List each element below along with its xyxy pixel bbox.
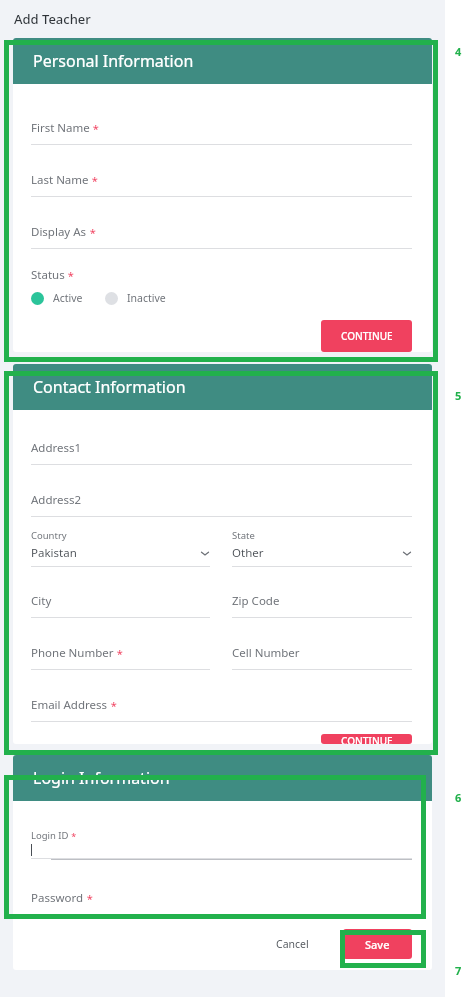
staticText: Cancel <box>276 937 309 951</box>
staticText: Status <box>31 267 65 283</box>
button[interactable]: Address2 <box>31 492 412 517</box>
staticText: 5 <box>455 388 462 403</box>
staticText: Address1 <box>31 440 82 456</box>
button[interactable]: First Name <box>31 120 412 145</box>
staticText: State <box>232 529 255 542</box>
staticText: Last Name <box>31 172 89 188</box>
button[interactable]: State <box>232 529 412 567</box>
staticText: First Name <box>31 120 90 136</box>
other: Expand Country <box>200 548 210 558</box>
staticText: Personal Information <box>33 50 194 72</box>
button[interactable]: Zip Code <box>232 593 412 618</box>
staticText: * <box>65 268 74 283</box>
staticText: Inactive <box>127 291 166 305</box>
staticText: * <box>87 225 96 240</box>
button[interactable]: Password <box>31 890 412 915</box>
staticText: Login Information <box>33 767 170 789</box>
button[interactable]: Country <box>31 529 210 567</box>
staticText: Contact Information <box>33 376 186 398</box>
staticText: Address2 <box>31 492 82 508</box>
staticText: * <box>89 173 98 188</box>
staticText: Pakistan <box>31 545 200 561</box>
staticText: * <box>84 891 93 906</box>
staticText: Country <box>31 529 67 542</box>
button[interactable]: Cancel <box>251 929 334 959</box>
button[interactable]: Last Name <box>31 172 412 197</box>
staticText: Password <box>31 890 84 906</box>
staticText: 6 <box>455 790 462 805</box>
button[interactable]: CONTINUE <box>321 734 412 744</box>
button[interactable]: Save <box>343 929 412 959</box>
staticText: 4 <box>455 44 462 59</box>
staticText: Zip Code <box>232 593 280 609</box>
staticText: Display As <box>31 224 87 240</box>
staticText: Phone Number <box>31 645 114 661</box>
staticText: * <box>108 698 117 713</box>
staticText: * <box>69 830 77 842</box>
other: Expand State <box>402 548 412 558</box>
staticText: Add Teacher <box>14 10 91 28</box>
staticText: Cell Number <box>232 645 300 661</box>
staticText: * <box>114 646 123 661</box>
button[interactable]: Login ID <box>31 829 412 860</box>
staticText: City <box>31 593 52 609</box>
staticText: 7 <box>455 963 462 978</box>
button[interactable]: Inactive <box>105 291 166 305</box>
staticText: CONTINUE <box>341 329 393 343</box>
button[interactable]: Display As <box>31 224 412 249</box>
button[interactable]: Cell Number <box>232 645 412 670</box>
button[interactable]: CONTINUE <box>321 320 412 352</box>
staticText: CONTINUE <box>341 734 393 744</box>
staticText: Email Address <box>31 697 108 713</box>
button[interactable]: Email Address <box>31 697 412 722</box>
button[interactable]: Phone Number <box>31 645 210 670</box>
staticText: Save <box>365 937 390 952</box>
button[interactable]: City <box>31 593 210 618</box>
button[interactable]: Active <box>31 291 83 305</box>
button[interactable]: Address1 <box>31 440 412 465</box>
staticText: Other <box>232 545 402 561</box>
staticText: Active <box>53 291 83 305</box>
staticText: Login ID <box>31 829 69 842</box>
staticText: * <box>90 121 99 136</box>
